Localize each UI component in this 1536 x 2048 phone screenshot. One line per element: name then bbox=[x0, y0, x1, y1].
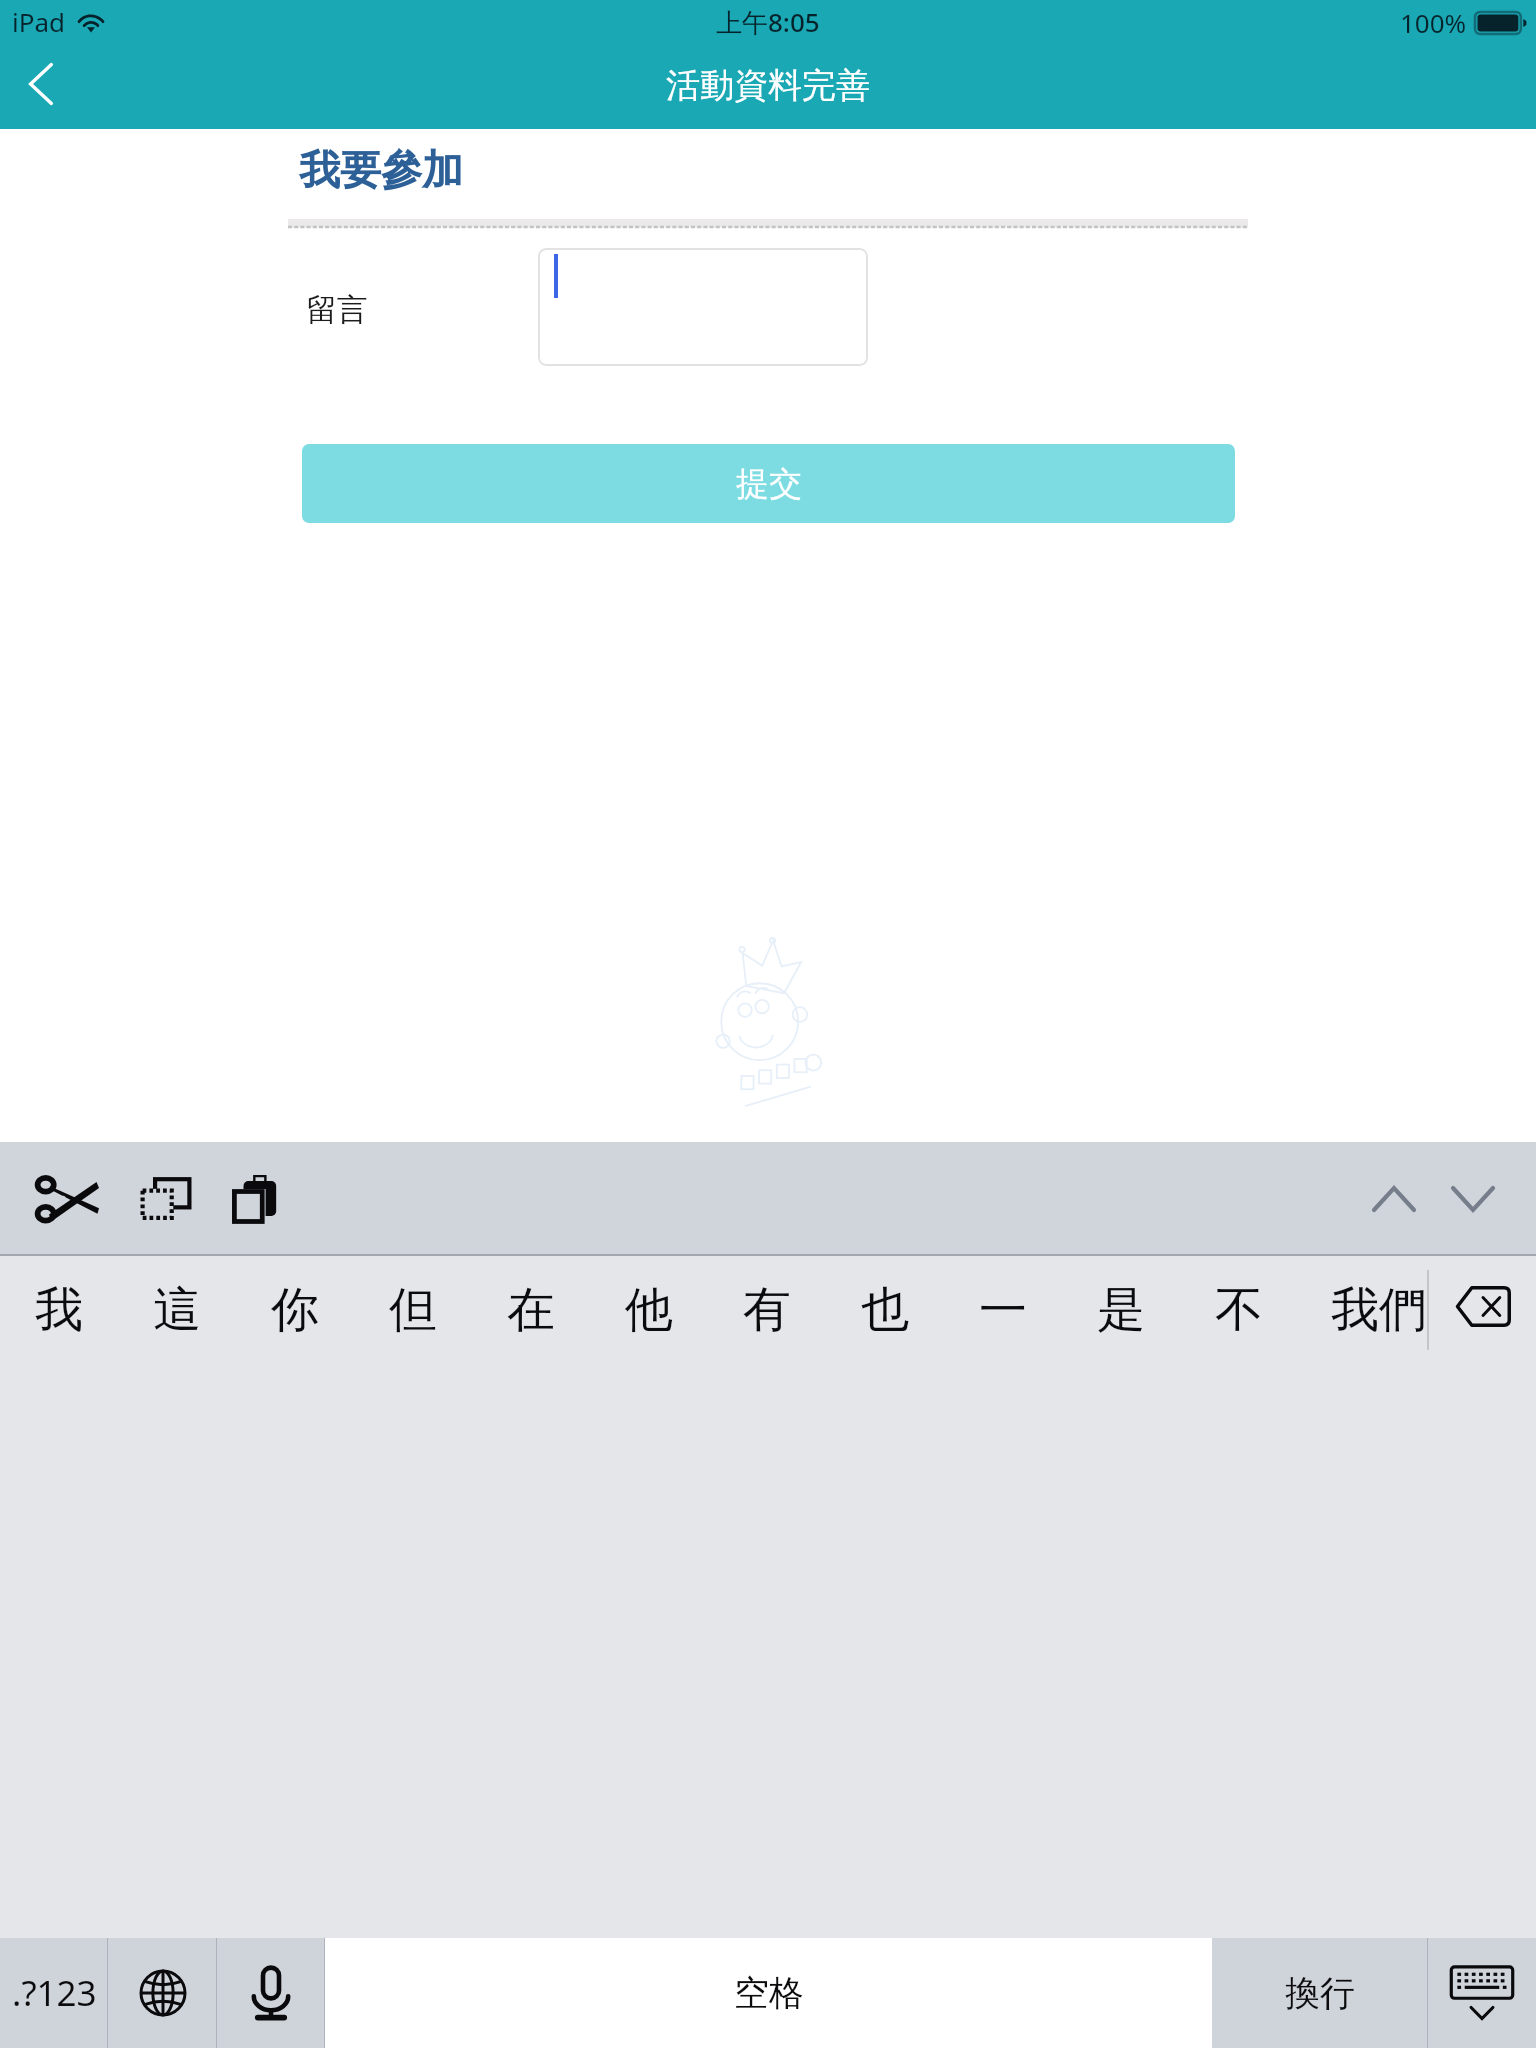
staticText: 不 bbox=[1215, 1280, 1263, 1340]
button[interactable]: 是 bbox=[1062, 1270, 1180, 1350]
button[interactable]: 一 bbox=[944, 1270, 1062, 1350]
staticText: 空格 bbox=[734, 1971, 804, 2015]
button[interactable]: Previous bbox=[1350, 1142, 1438, 1255]
staticText: 但 bbox=[389, 1280, 437, 1340]
staticText: 上午8:05 bbox=[716, 4, 820, 40]
button[interactable]: .?123 bbox=[0, 1938, 108, 2048]
button[interactable]: 但 bbox=[354, 1270, 472, 1350]
staticText: 這 bbox=[153, 1280, 201, 1340]
staticText: 你 bbox=[271, 1280, 319, 1340]
button[interactable]: Back bbox=[0, 46, 86, 129]
staticText: 在 bbox=[507, 1280, 555, 1340]
button[interactable]: 有 bbox=[708, 1270, 826, 1350]
staticText: iPad bbox=[12, 4, 66, 39]
staticText: 一 bbox=[979, 1280, 1027, 1340]
button[interactable]: Copy bbox=[116, 1142, 216, 1255]
button[interactable]: Hide keyboard bbox=[1428, 1938, 1536, 2048]
staticText: 留言 bbox=[306, 290, 368, 329]
button[interactable]: 不 bbox=[1180, 1270, 1298, 1350]
button[interactable]: Dictation bbox=[217, 1938, 325, 2048]
staticText: 是 bbox=[1097, 1280, 1145, 1340]
button[interactable]: 提交 bbox=[302, 444, 1235, 523]
button[interactable]: Paste bbox=[206, 1142, 306, 1255]
staticText: .?123 bbox=[12, 1969, 97, 2017]
button[interactable]: 也 bbox=[826, 1270, 944, 1350]
button[interactable]: Cut bbox=[18, 1142, 118, 1255]
button[interactable]: 他 bbox=[590, 1270, 708, 1350]
staticText: 活動資料完善 bbox=[666, 64, 870, 107]
staticText: 我 bbox=[35, 1280, 83, 1340]
staticText: 100% bbox=[1400, 5, 1467, 40]
button[interactable]: Switch keyboard bbox=[108, 1938, 217, 2048]
button[interactable] bbox=[538, 248, 868, 366]
staticText: 提交 bbox=[736, 463, 802, 505]
button[interactable]: Next bbox=[1429, 1142, 1517, 1255]
button[interactable]: 我 bbox=[0, 1270, 118, 1350]
staticText: 換行 bbox=[1285, 1971, 1355, 2015]
button[interactable]: 換行 bbox=[1212, 1938, 1428, 2048]
button[interactable]: 這 bbox=[118, 1270, 236, 1350]
staticText: 有 bbox=[743, 1280, 791, 1340]
staticText: 我要參加 bbox=[299, 145, 463, 197]
button[interactable]: 空格 bbox=[325, 1938, 1212, 2048]
staticText: 我們 bbox=[1331, 1280, 1427, 1340]
button[interactable]: 我們 bbox=[1324, 1270, 1434, 1350]
button[interactable]: 在 bbox=[472, 1270, 590, 1350]
button[interactable]: Delete bbox=[1430, 1266, 1536, 1346]
button[interactable]: 你 bbox=[236, 1270, 354, 1350]
staticText: 他 bbox=[625, 1280, 673, 1340]
staticText: 也 bbox=[861, 1280, 909, 1340]
